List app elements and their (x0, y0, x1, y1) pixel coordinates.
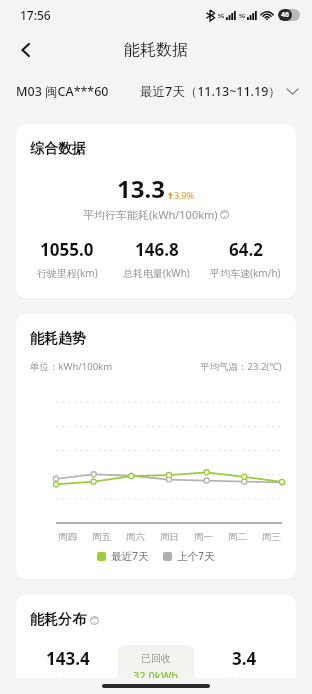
button[interactable]: 最近7天（11.13~11.19） (140, 83, 298, 100)
button[interactable]: M03 闽CA***60 (16, 83, 109, 100)
staticText: 能耗数据 (124, 40, 188, 60)
staticText: 周二 (228, 531, 247, 543)
staticText: 周日 (160, 531, 179, 543)
staticText: 能耗分布 (30, 611, 86, 629)
staticText: 13.3 (117, 172, 165, 205)
staticText: 平均车速(km/h) (210, 266, 281, 280)
staticText: 146.8 (135, 238, 179, 261)
staticText: 3.9% (174, 189, 195, 201)
staticText: 行驶里程(km) (37, 266, 98, 280)
staticText: 5G (218, 13, 225, 20)
staticText: 单位：kWh/100km (30, 360, 113, 373)
staticText: 32.0kWh (133, 668, 179, 678)
staticText: 5G (239, 13, 246, 20)
staticText: 总耗电量(kWh) (123, 266, 190, 280)
staticText: 周一 (194, 531, 213, 543)
staticText: 平均行车能耗(kWh/100km) (83, 207, 218, 222)
staticText: 周三 (262, 531, 281, 543)
staticText: 上个7天 (177, 549, 215, 563)
staticText: 46 (281, 10, 290, 20)
staticText: 64.2 (229, 238, 263, 261)
staticText: 周四 (58, 531, 77, 543)
staticText: 能耗趋势 (30, 330, 86, 348)
staticText: 已回收 (141, 652, 171, 665)
staticText: 最近7天 (111, 549, 149, 563)
staticText: 143.4 (46, 647, 90, 670)
button[interactable]: 返回 (8, 32, 44, 68)
staticText: 最近7天（11.13~11.19） (140, 83, 281, 100)
staticText: 周六 (126, 531, 145, 543)
staticText: 综合数据 (30, 140, 86, 158)
staticText: 3.4 (232, 647, 257, 670)
staticText: 17:56 (20, 7, 51, 23)
staticText: 周五 (92, 531, 111, 543)
staticText: 1055.0 (40, 238, 94, 261)
staticText: 平均气温：23.2(℃) (200, 360, 282, 373)
